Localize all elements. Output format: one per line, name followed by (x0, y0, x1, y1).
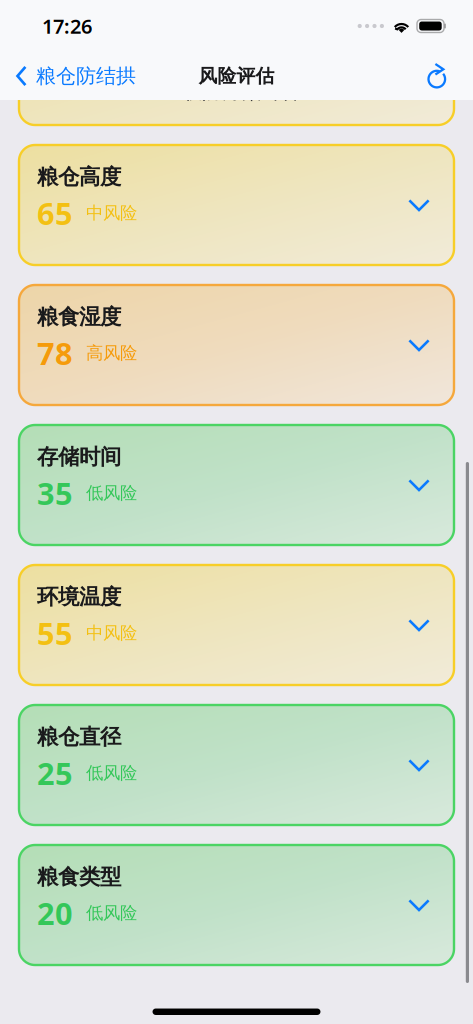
staticText: 65 (37, 193, 73, 233)
button[interactable]: 粮食湿度 (19, 285, 454, 405)
staticText: 低风险 (86, 762, 137, 784)
staticText: 粮食类型 (37, 864, 121, 890)
staticText: 粮食湿度 (37, 304, 121, 330)
button[interactable]: 粮仓直径 (19, 705, 454, 825)
button[interactable]: 粮仓防结拱 (0, 58, 136, 94)
staticText: 20 (37, 893, 73, 933)
button[interactable]: 粮食类型 (19, 845, 454, 965)
staticText: 环境温度 (37, 584, 121, 610)
staticText: 粮仓直径 (37, 724, 121, 750)
button[interactable]: 环境温度 (19, 565, 454, 685)
staticText: 存储时间 (37, 444, 121, 470)
staticText: 中风险 (86, 622, 137, 644)
button[interactable]: 存储时间 (19, 425, 454, 545)
staticText: 低风险 (86, 482, 137, 504)
staticText: 17:26 (42, 13, 92, 39)
button[interactable]: 粮仓高度 (19, 145, 454, 265)
staticText: 25 (37, 753, 73, 793)
staticText: 粮仓防结拱 (36, 64, 136, 88)
staticText: 低风险 (86, 902, 137, 924)
staticText: 35 (37, 473, 73, 513)
staticText: 中风险 (86, 202, 137, 224)
staticText: 55 (37, 613, 73, 653)
staticText: 4. 联防方案计算 (161, 77, 302, 104)
staticText: 高风险 (86, 342, 137, 364)
staticText: 风险评估 (198, 64, 274, 87)
staticText: 粮仓高度 (37, 164, 121, 190)
button[interactable]: Refresh (425, 56, 473, 95)
staticText: 78 (37, 333, 73, 373)
